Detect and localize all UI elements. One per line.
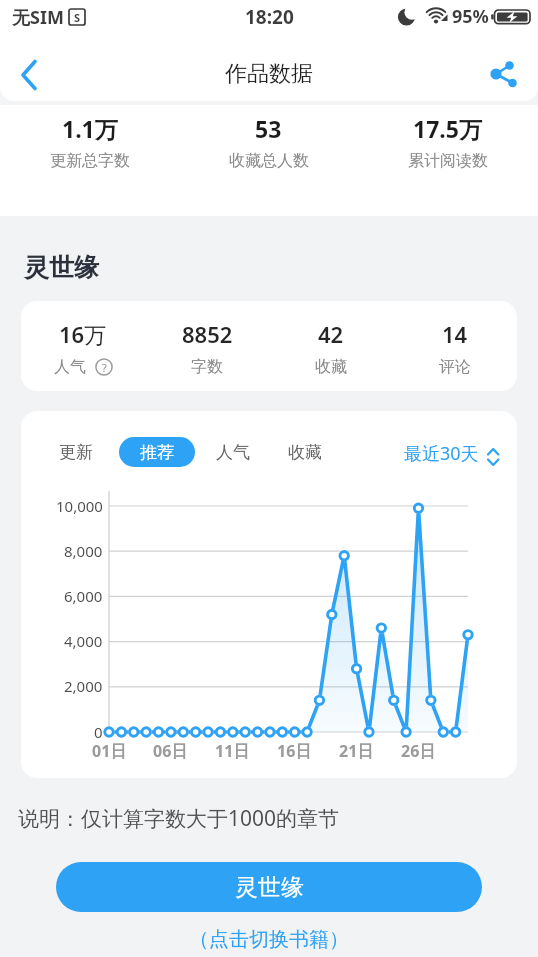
staticText: 字数 <box>191 357 223 377</box>
button[interactable]: 灵世缘 <box>56 862 482 912</box>
button[interactable]: （点击切换书籍） <box>159 924 379 954</box>
staticText: 推荐 <box>140 442 174 463</box>
staticText: 2,000 <box>64 676 103 696</box>
staticText: 11日 <box>215 740 250 762</box>
button[interactable]: 人气 <box>21 354 145 380</box>
staticText: 更新总字数 <box>50 151 130 171</box>
button[interactable] <box>10 55 50 95</box>
staticText: 16日 <box>277 740 312 762</box>
staticText: 收藏总人数 <box>229 151 309 171</box>
staticText: 6,000 <box>64 586 103 606</box>
staticText: ? <box>102 360 107 375</box>
staticText: 累计阅读数 <box>408 151 488 171</box>
button[interactable]: 人气 <box>203 437 263 467</box>
staticText: 1.1万 <box>62 113 118 144</box>
staticText: 01日 <box>92 740 127 762</box>
staticText: 评论 <box>439 357 471 377</box>
staticText: （点击切换书籍） <box>189 927 349 952</box>
staticText: 14 <box>442 319 468 349</box>
button[interactable]: 收藏 <box>275 437 335 467</box>
staticText: 无SIM <box>12 5 64 27</box>
staticText: 更新 <box>59 442 93 463</box>
staticText: 16万 <box>59 319 107 349</box>
button[interactable] <box>482 54 526 94</box>
staticText: 最近30天 <box>404 441 479 466</box>
staticText: 说明：仅计算字数大于1000的章节 <box>18 804 340 833</box>
staticText: 灵世缘 <box>235 873 304 902</box>
staticText: 收藏 <box>288 442 322 463</box>
staticText: 18:20 <box>245 4 294 28</box>
staticText: 收藏 <box>315 357 347 377</box>
staticText: 17.5万 <box>413 113 482 144</box>
staticText: 人气 <box>54 357 86 377</box>
button[interactable]: 最近30天 <box>404 440 488 466</box>
staticText: 10,000 <box>56 496 103 516</box>
staticText: 4,000 <box>64 631 103 651</box>
button[interactable]: 更新 <box>46 437 106 467</box>
staticText: 0 <box>94 722 103 742</box>
staticText: S <box>74 10 81 25</box>
staticText: 8852 <box>182 319 233 349</box>
staticText: 作品数据 <box>225 60 313 88</box>
staticText: 06日 <box>153 740 188 762</box>
button[interactable]: 推荐 <box>119 437 195 467</box>
staticText: 21日 <box>339 740 374 762</box>
staticText: 26日 <box>401 740 436 762</box>
staticText: 53 <box>255 113 282 144</box>
staticText: 灵世缘 <box>24 252 99 283</box>
staticText: 人气 <box>216 442 250 463</box>
staticText: 42 <box>318 319 344 349</box>
staticText: 95% <box>452 4 489 28</box>
staticText: 8,000 <box>64 541 103 561</box>
